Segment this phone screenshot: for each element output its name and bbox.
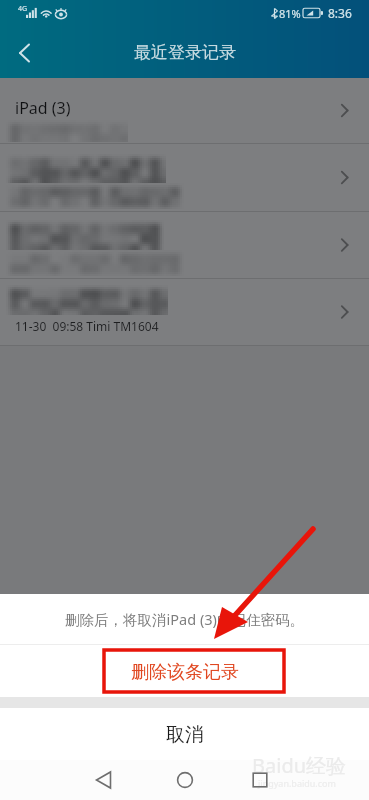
button[interactable]: Back	[80, 760, 128, 800]
button[interactable]: 取消	[0, 708, 369, 760]
staticText: 删除后，将取消iPad (3)的记住密码。	[65, 609, 304, 629]
button[interactable]: Home	[161, 760, 209, 800]
button[interactable]: 11-30 09:58 Timi TM1604	[0, 279, 369, 345]
button[interactable]: iPad (3)	[0, 78, 369, 143]
staticText: 11-30 09:58 Timi TM1604	[15, 318, 159, 334]
staticText: 取消	[166, 723, 204, 747]
staticText: jingyan.baidu.com	[258, 777, 336, 789]
button[interactable]	[0, 144, 369, 211]
staticText: iPad (3)	[15, 97, 71, 119]
staticText: 8:36	[328, 5, 352, 21]
staticText: 4G	[18, 4, 28, 14]
button[interactable]: Recent apps	[236, 760, 284, 800]
staticText: 删除该条记录	[131, 661, 239, 684]
staticText: Baidu经验	[252, 752, 347, 779]
button[interactable]: 删除该条记录	[0, 645, 369, 697]
staticText: 81%	[279, 6, 301, 21]
button[interactable]: Back	[0, 28, 44, 78]
staticText: 最近登录记录	[134, 42, 236, 63]
button[interactable]	[0, 212, 369, 278]
